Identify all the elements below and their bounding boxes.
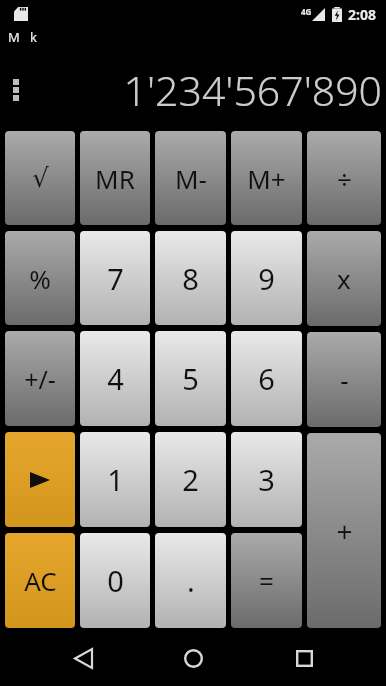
button[interactable]: +	[307, 433, 381, 628]
staticText: -	[340, 362, 349, 397]
staticText: 2:08	[348, 5, 376, 24]
button[interactable]: 8	[155, 231, 226, 325]
button[interactable]: 3	[231, 432, 302, 527]
staticText: AC	[24, 563, 57, 598]
button[interactable]: Back	[55, 630, 111, 686]
button[interactable]: ÷	[307, 131, 381, 225]
staticText: 2	[182, 460, 199, 499]
staticText: 1'234'567'890	[123, 62, 382, 118]
staticText: 9	[258, 259, 275, 298]
button[interactable]: 4	[80, 331, 150, 426]
button[interactable]: AC	[5, 533, 75, 628]
button[interactable]: 5	[155, 331, 226, 426]
staticText: M	[8, 28, 20, 46]
button[interactable]: Recent apps	[276, 630, 332, 686]
staticText: 7	[107, 259, 124, 298]
button[interactable]: Next	[5, 432, 75, 527]
button[interactable]: .	[155, 533, 226, 628]
button[interactable]: M+	[231, 131, 302, 225]
button[interactable]: +/-	[5, 331, 75, 426]
button[interactable]: Home	[165, 630, 221, 686]
staticText: =	[259, 563, 274, 598]
button[interactable]: =	[231, 533, 302, 628]
button[interactable]: x	[307, 231, 381, 326]
staticText: +/-	[24, 362, 56, 396]
button[interactable]: 2	[155, 432, 226, 527]
staticText: 1	[107, 460, 124, 499]
staticText: k	[30, 28, 37, 46]
staticText: √	[32, 163, 49, 193]
button[interactable]: 6	[231, 331, 302, 426]
button[interactable]: More options	[2, 70, 30, 110]
button[interactable]: √	[5, 131, 75, 225]
button[interactable]: 1	[80, 432, 150, 527]
button[interactable]: 7	[80, 231, 150, 325]
staticText: MR	[95, 161, 135, 196]
button[interactable]: %	[5, 231, 75, 325]
staticText: 4	[107, 359, 124, 398]
staticText: +	[336, 512, 353, 550]
staticText: 0	[107, 561, 124, 600]
staticText: %	[29, 261, 51, 296]
button[interactable]: M-	[155, 131, 226, 225]
staticText: 3	[258, 460, 275, 499]
staticText: M-	[175, 161, 207, 196]
button[interactable]: MR	[80, 131, 150, 225]
staticText: M+	[247, 161, 286, 196]
staticText: 6	[258, 359, 275, 398]
staticText: x	[337, 261, 351, 296]
staticText: 4G	[301, 6, 312, 17]
staticText: ÷	[337, 161, 352, 196]
staticText: 8	[182, 259, 199, 298]
button[interactable]: -	[307, 332, 381, 427]
button[interactable]: 9	[231, 231, 302, 325]
button[interactable]: 0	[80, 533, 150, 628]
staticText: .	[187, 561, 195, 600]
staticText: 5	[182, 359, 199, 398]
